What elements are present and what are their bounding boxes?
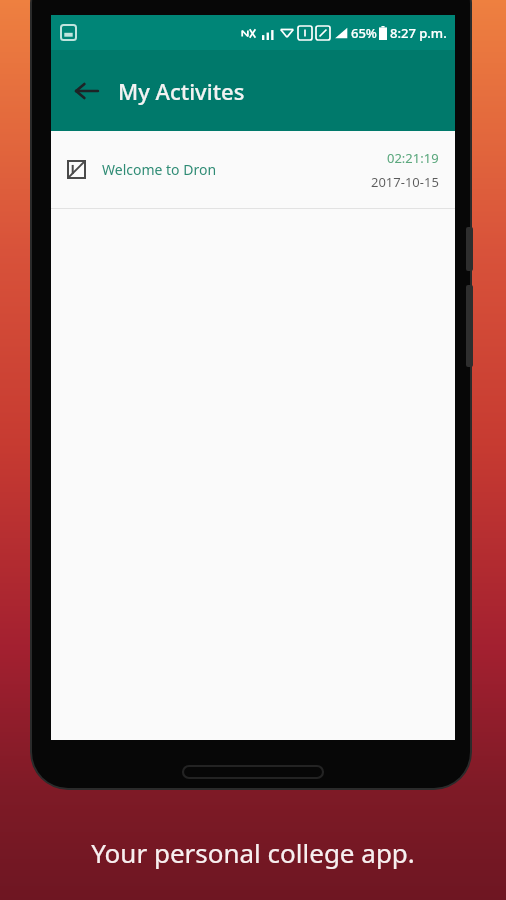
button[interactable]: Back <box>65 69 109 113</box>
staticText: 2017-10-15 <box>371 173 439 191</box>
staticText: 8:27 p.m. <box>390 24 447 42</box>
button[interactable]: Welcome to Dron <box>51 131 455 208</box>
staticText: 02:21:19 <box>387 149 439 167</box>
staticText: Your personal college app. <box>0 835 506 870</box>
staticText: Welcome to Dron <box>102 160 217 179</box>
staticText: My Activites <box>118 76 245 106</box>
staticText: 65% <box>351 24 377 42</box>
